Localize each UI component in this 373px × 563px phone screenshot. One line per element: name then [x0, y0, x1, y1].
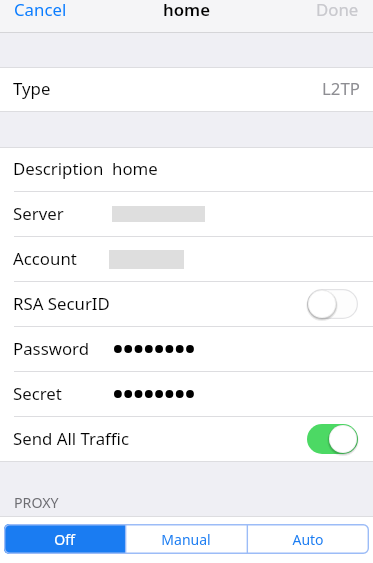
staticText: home — [112, 157, 158, 180]
button[interactable]: RSA SecurID — [0, 282, 373, 326]
staticText: Server — [13, 202, 64, 225]
button[interactable]: Cancel — [0, 0, 81, 22]
staticText: Auto — [292, 530, 324, 549]
button[interactable]: Auto — [247, 524, 369, 554]
button[interactable]: Send All Traffic — [0, 417, 373, 461]
staticText: Send All Traffic — [13, 427, 130, 450]
staticText: Off — [54, 530, 75, 549]
staticText: PROXY — [14, 493, 59, 512]
staticText: Password — [13, 337, 89, 360]
staticText: Secret — [13, 382, 62, 405]
staticText: Manual — [161, 530, 211, 549]
button[interactable]: Off — [4, 524, 125, 554]
button[interactable]: Password — [0, 327, 373, 371]
button[interactable]: RSA SecurID off — [307, 289, 358, 319]
button[interactable]: Account — [0, 237, 373, 281]
button[interactable]: Done — [302, 0, 373, 22]
button[interactable]: Type — [0, 67, 373, 112]
staticText: Cancel — [14, 0, 67, 21]
staticText: L2TP — [322, 77, 360, 100]
staticText: Done — [316, 0, 359, 21]
staticText: Description — [13, 157, 104, 180]
button[interactable]: Server — [0, 192, 373, 236]
button[interactable]: Manual — [125, 524, 247, 554]
staticText: RSA SecurID — [13, 292, 110, 315]
button[interactable]: Send All Traffic on — [307, 424, 358, 454]
staticText: home — [163, 0, 211, 21]
staticText: Type — [13, 77, 51, 100]
button[interactable]: Secret — [0, 372, 373, 416]
staticText: Account — [13, 247, 77, 270]
button[interactable]: Description — [0, 147, 373, 191]
